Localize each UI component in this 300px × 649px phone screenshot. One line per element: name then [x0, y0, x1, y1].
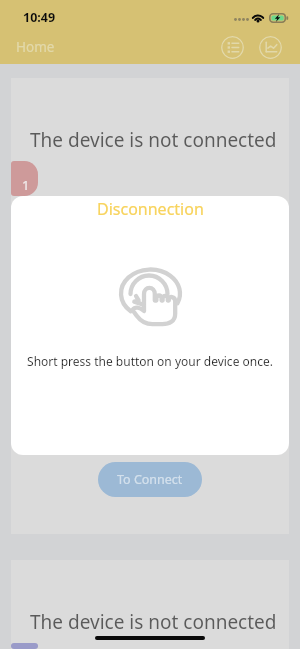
staticText: 1: [22, 176, 30, 194]
staticText: Home: [16, 38, 55, 56]
staticText: The device is not connected: [30, 609, 277, 635]
button[interactable]: The device is not connected: [11, 78, 289, 534]
button[interactable]: Statistics chart: [259, 36, 282, 59]
staticText: 10:49: [23, 9, 56, 26]
button[interactable]: To Connect: [98, 462, 202, 497]
staticText: The device is not connected: [30, 127, 277, 153]
staticText: Disconnection: [97, 198, 204, 220]
staticText: Short press the button on your device on…: [27, 353, 273, 369]
button[interactable]: Device list: [221, 36, 244, 59]
staticText: To Connect: [117, 471, 183, 488]
button[interactable]: The device is not connected: [11, 560, 289, 649]
